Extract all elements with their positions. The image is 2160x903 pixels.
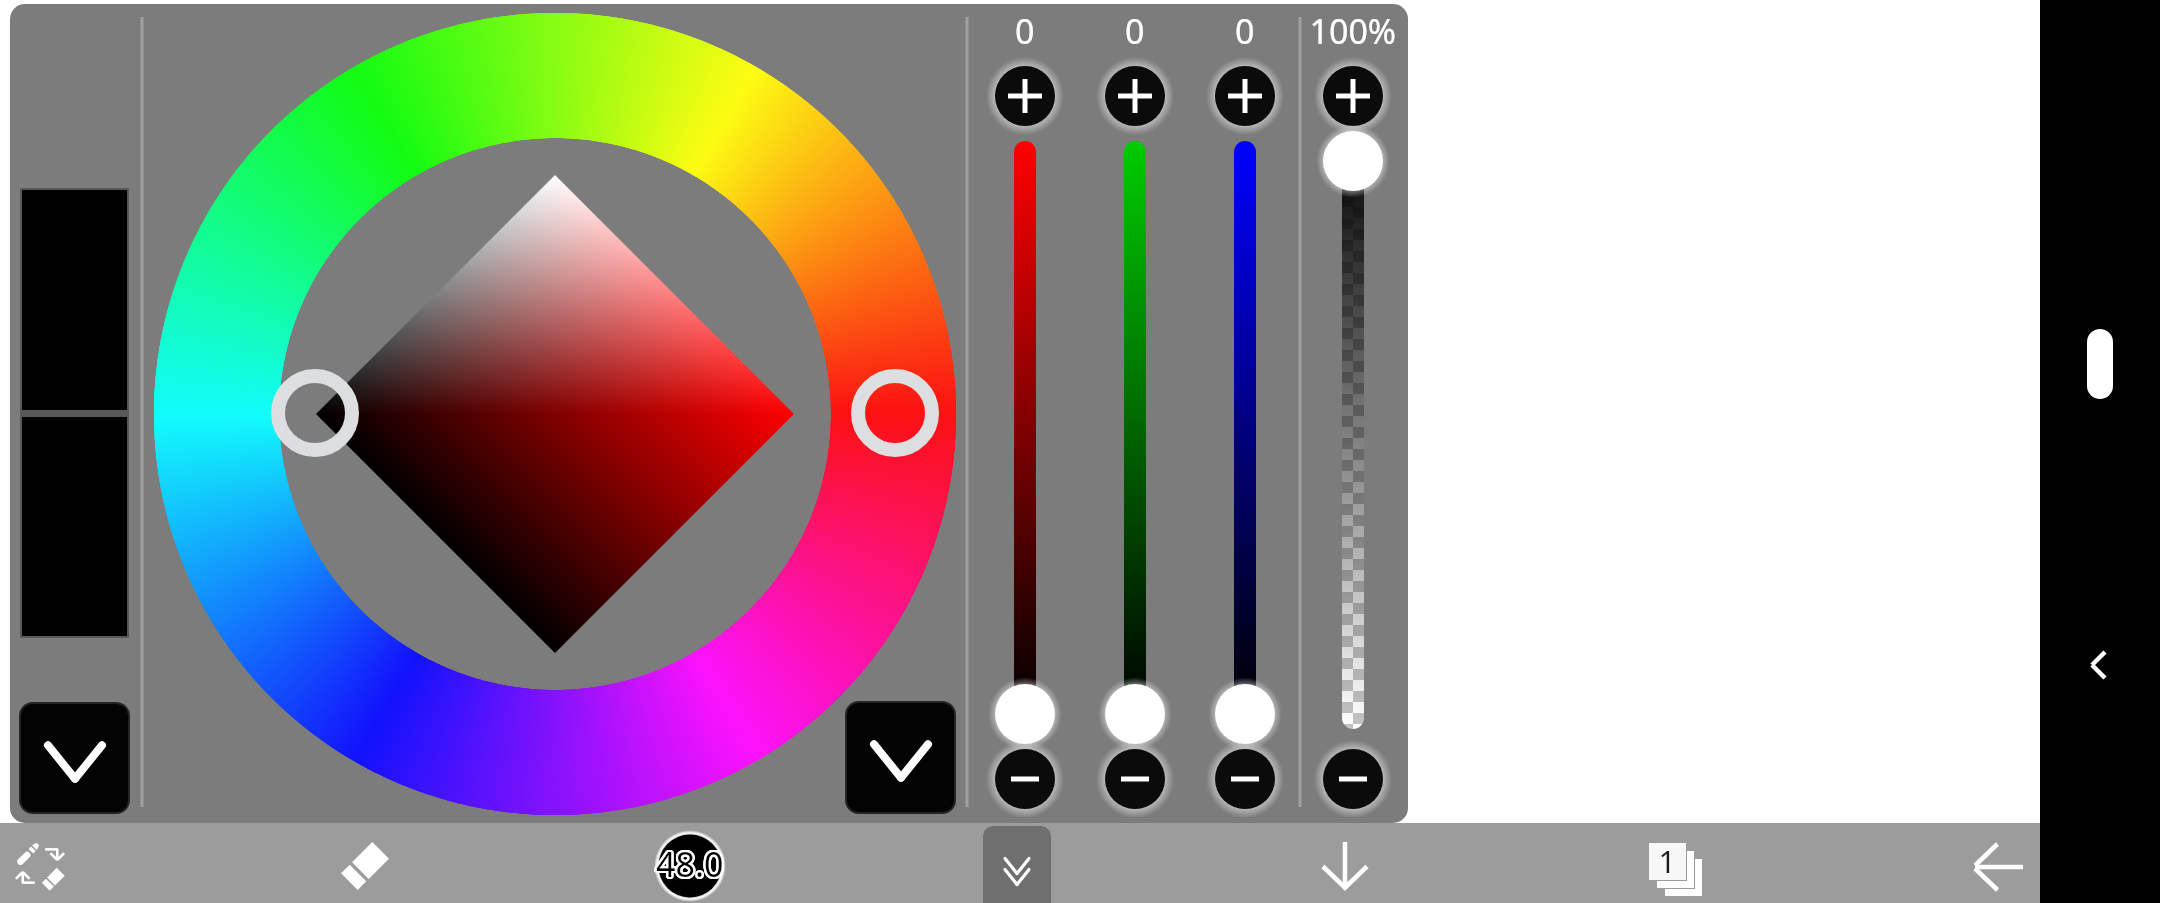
button[interactable]: Collapse swatches bbox=[21, 704, 128, 812]
button[interactable]: Colour wheel and saturation triangle bbox=[155, 14, 955, 814]
button[interactable]: Download bbox=[1280, 823, 1410, 903]
button[interactable]: Collapse colour wheel bbox=[847, 703, 954, 812]
button[interactable]: Primary colour swatch bbox=[20, 188, 129, 413]
button[interactable]: opacity slider bbox=[1319, 133, 1387, 737]
button[interactable]: Eraser bbox=[300, 823, 430, 903]
button[interactable]: Decrease red bbox=[991, 745, 1059, 813]
button[interactable]: green slider bbox=[1101, 133, 1169, 737]
button[interactable]: Secondary colour swatch bbox=[20, 413, 129, 638]
button[interactable]: Home bbox=[2070, 320, 2130, 410]
button[interactable]: Back bbox=[2070, 630, 2130, 700]
button[interactable]: Hide colour panel bbox=[983, 826, 1051, 903]
button[interactable]: Increase red bbox=[991, 62, 1059, 130]
button[interactable]: Increase blue bbox=[1211, 62, 1279, 130]
button[interactable]: Decrease opacity bbox=[1319, 745, 1387, 813]
button[interactable]: Brush size 48.0 bbox=[625, 823, 755, 903]
button[interactable]: blue slider bbox=[1211, 133, 1279, 737]
button[interactable]: Swap brush and eraser bbox=[0, 823, 130, 903]
button[interactable]: Decrease blue bbox=[1211, 745, 1279, 813]
button[interactable]: Undo bbox=[1935, 823, 2065, 903]
button[interactable]: Layers, 1 layer bbox=[1605, 823, 1735, 903]
button[interactable]: Decrease green bbox=[1101, 745, 1169, 813]
button[interactable]: Increase opacity bbox=[1319, 62, 1387, 130]
button[interactable]: red slider bbox=[991, 133, 1059, 737]
button[interactable]: Increase green bbox=[1101, 62, 1169, 130]
